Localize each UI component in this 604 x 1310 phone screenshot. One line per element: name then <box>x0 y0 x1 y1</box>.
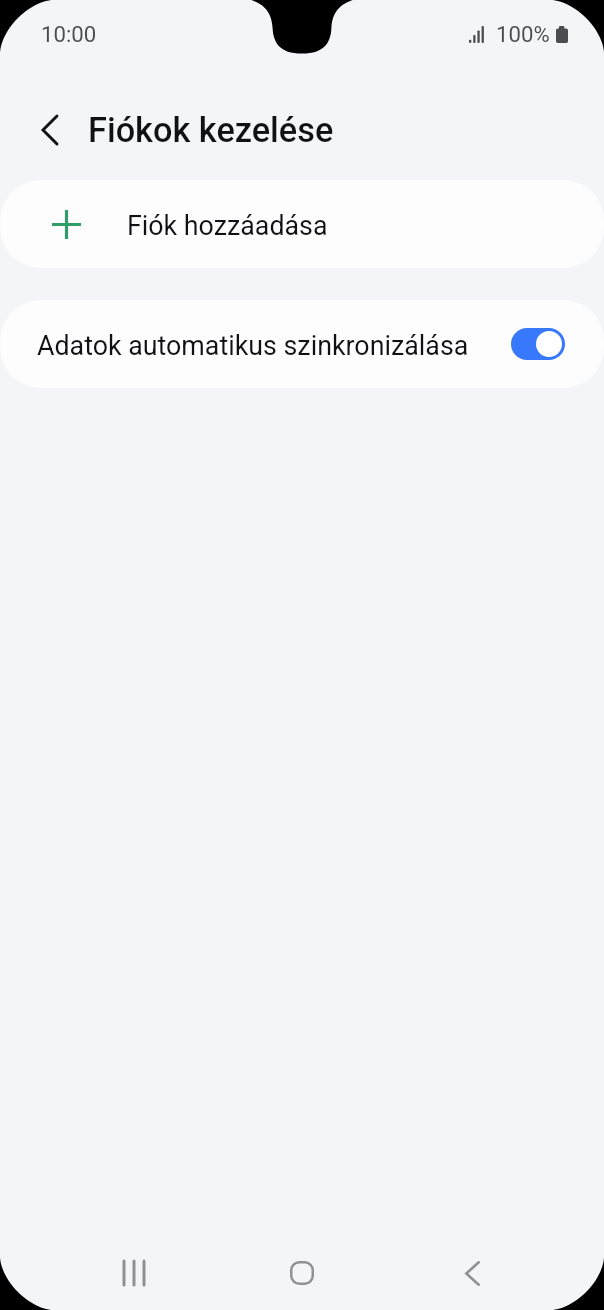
staticText: Adatok automatikus szinkronizálása <box>37 330 469 361</box>
staticText: Fiók hozzáadása <box>127 210 328 241</box>
button[interactable]: Adatok automatikus szinkronizálása <box>0 300 604 388</box>
button[interactable]: Fiók hozzáadása <box>0 180 604 268</box>
button[interactable]: Recent apps <box>104 1243 164 1303</box>
button[interactable]: Home <box>272 1243 332 1303</box>
button[interactable]: Back <box>28 108 72 152</box>
button[interactable]: Auto sync toggle <box>511 328 565 360</box>
staticText: 10:00 <box>41 21 97 47</box>
staticText: 100% <box>496 21 550 47</box>
button[interactable]: Back <box>442 1243 502 1303</box>
staticText: Fiókok kezelése <box>88 110 334 150</box>
